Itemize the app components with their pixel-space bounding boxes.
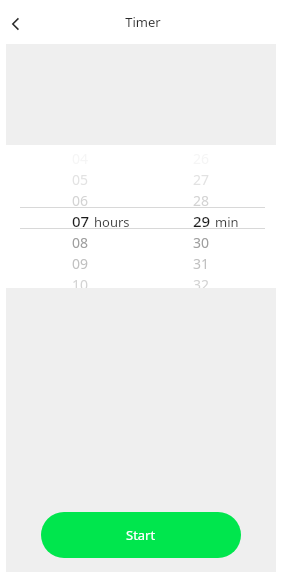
staticText: 09 [72, 254, 89, 273]
staticText: 10 [72, 275, 89, 294]
staticText: hours [94, 213, 130, 231]
staticText: 08 [72, 233, 89, 252]
staticText: 32 [193, 275, 210, 294]
staticText: min [215, 213, 239, 231]
button[interactable]: Start [41, 512, 241, 558]
staticText: Timer [125, 13, 161, 31]
staticText: 07 [72, 211, 90, 231]
staticText: 31 [193, 254, 210, 273]
staticText: 06 [72, 191, 89, 210]
staticText: 29 [193, 211, 211, 231]
staticText: 26 [193, 149, 210, 168]
staticText: 27 [193, 170, 210, 189]
staticText: Start [126, 526, 156, 544]
staticText: 05 [72, 170, 89, 189]
staticText: 28 [193, 191, 210, 210]
button[interactable]: Back [2, 10, 30, 38]
staticText: 04 [72, 149, 89, 168]
staticText: 30 [193, 233, 210, 252]
